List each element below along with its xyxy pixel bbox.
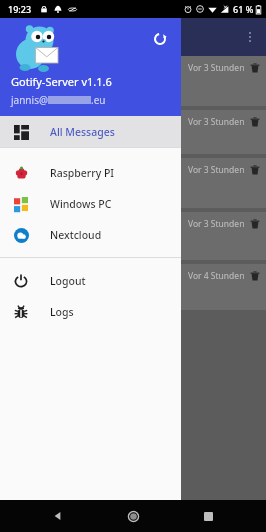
button[interactable]: Recent apps — [191, 500, 225, 532]
staticText: Windows PC — [50, 197, 112, 211]
staticText: 19:23 — [8, 3, 32, 15]
staticText: 61 % — [233, 3, 254, 15]
staticText: Nextcloud — [50, 228, 102, 242]
button[interactable]: Logout — [0, 265, 181, 296]
staticText: Gotify-Server v1.1.6 — [11, 74, 112, 89]
button[interactable]: Raspberry PI — [0, 157, 181, 188]
button[interactable]: More options — [238, 25, 262, 49]
staticText: Vor 3 Stunden — [188, 218, 245, 230]
button[interactable]: Refresh — [147, 26, 173, 52]
button[interactable]: Back — [41, 500, 75, 532]
staticText: Vor 3 Stunden — [188, 164, 245, 176]
staticText: .eu — [91, 93, 106, 107]
staticText: GB). — [1, 234, 18, 246]
button[interactable]: Home — [116, 500, 150, 532]
button[interactable]: All Messages — [0, 116, 181, 147]
staticText: Raspberry PI — [50, 166, 115, 180]
staticText: All Messages — [50, 125, 115, 139]
staticText: Logs — [50, 305, 74, 319]
staticText: 2.168.0.1 — [1, 78, 38, 90]
staticText: Vor 3 Stunden — [188, 62, 245, 74]
staticText: jannis@ — [11, 93, 48, 107]
staticText: Logout — [50, 274, 86, 288]
button[interactable]: Nextcloud — [0, 219, 181, 250]
button[interactable]: Logs — [0, 296, 181, 327]
staticText: Vor 4 Stunden — [188, 270, 245, 282]
staticText: Vor 3 Stunden — [188, 116, 245, 128]
button[interactable]: Windows PC — [0, 188, 181, 219]
